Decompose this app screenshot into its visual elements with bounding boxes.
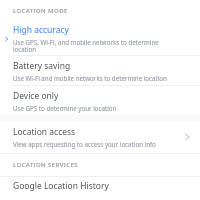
staticText: High accuracy xyxy=(13,24,69,36)
staticText: View apps requesting to access your loca… xyxy=(13,140,156,148)
other: Open Location access xyxy=(182,132,192,142)
button[interactable]: High accuracy xyxy=(0,22,200,55)
staticText: Google Location History xyxy=(13,180,109,192)
staticText: Device only xyxy=(13,90,59,102)
button[interactable]: Google Location History xyxy=(0,177,200,197)
staticText: LOCATION MODE xyxy=(13,7,68,15)
staticText: Use GPS, Wi-Fi, and mobile networks to d… xyxy=(13,38,174,54)
button[interactable]: Location access xyxy=(0,121,200,153)
staticText: Battery saving xyxy=(13,60,71,72)
staticText: Use GPS to determine your location xyxy=(13,104,117,112)
button[interactable]: Device only xyxy=(0,86,200,115)
staticText: Location access xyxy=(13,126,76,138)
staticText: Use Wi-Fi and mobile networks to determi… xyxy=(13,74,167,82)
staticText: LOCATION SERVICES xyxy=(13,161,79,169)
button[interactable]: Battery saving xyxy=(0,56,200,85)
